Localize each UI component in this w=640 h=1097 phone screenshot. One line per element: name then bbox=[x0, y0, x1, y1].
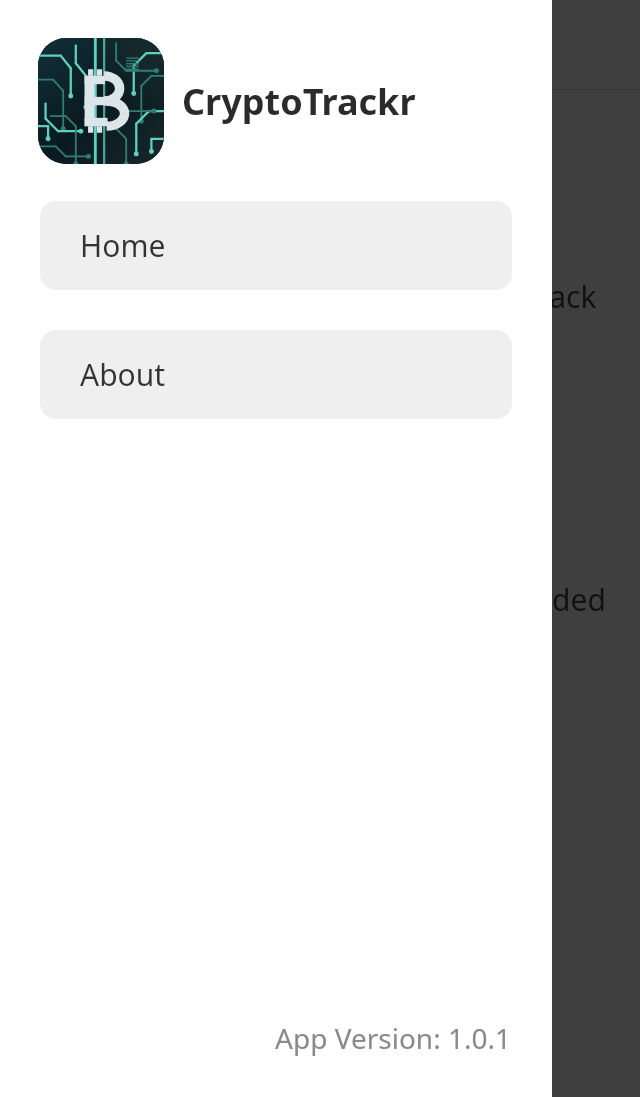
staticText: App Version: 1.0.1 bbox=[0, 1019, 511, 1057]
staticText: About bbox=[80, 354, 166, 395]
staticText: Welcome to the CryptoTrackr app! Track y… bbox=[36, 276, 616, 407]
button[interactable]: Open navigation menu bbox=[30, 17, 86, 73]
staticText: Home bbox=[80, 225, 166, 266]
button[interactable]: About bbox=[40, 330, 512, 419]
staticText: CryptoTrackr bbox=[182, 77, 416, 126]
button[interactable]: Home bbox=[40, 201, 512, 290]
staticText: Please note that market data is provided… bbox=[36, 579, 616, 665]
